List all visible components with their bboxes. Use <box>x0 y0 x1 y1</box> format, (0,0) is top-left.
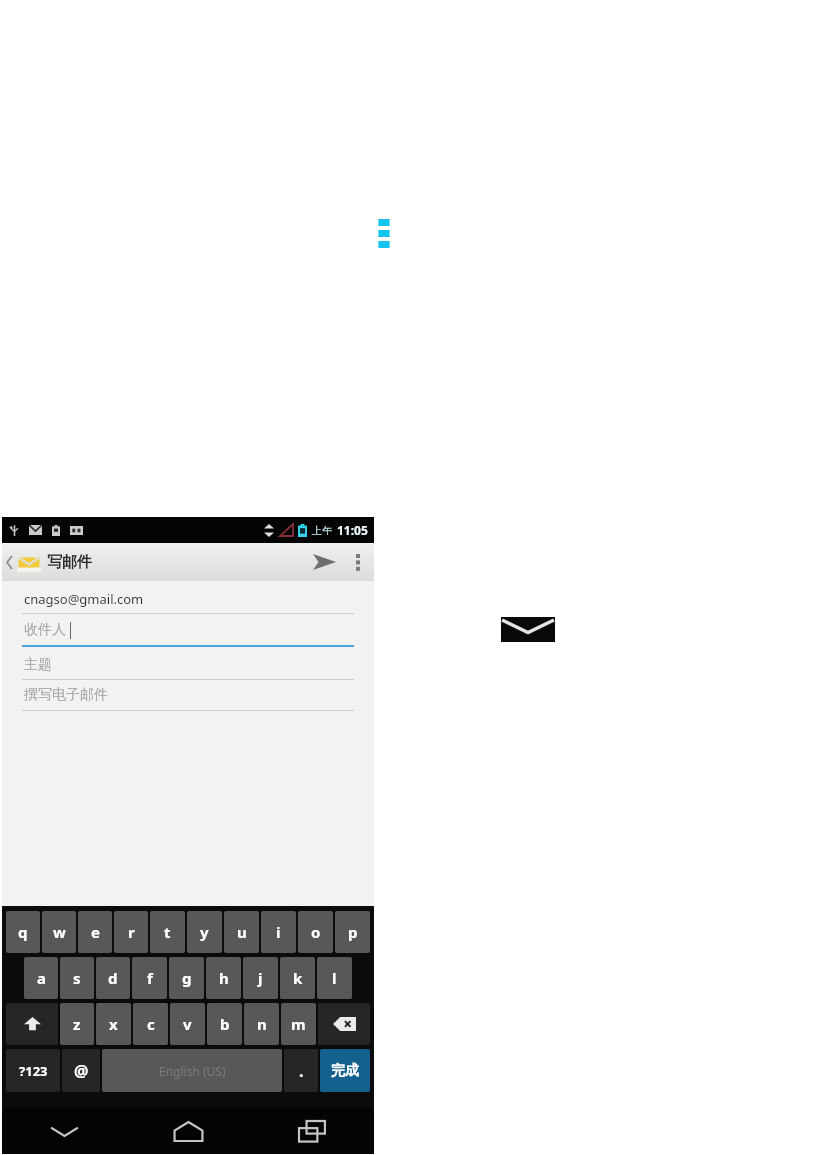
staticText: 收件人 <box>24 621 66 639</box>
staticText: 11:05 <box>337 522 368 538</box>
button[interactable]: v <box>170 1003 205 1045</box>
button[interactable]: a <box>24 957 58 999</box>
button[interactable]: 完成 <box>320 1049 370 1092</box>
staticText: s <box>73 968 81 988</box>
button[interactable]: j <box>243 957 278 999</box>
button[interactable]: w <box>42 911 76 953</box>
button[interactable]: q <box>6 911 40 953</box>
button[interactable]: Email <box>501 617 555 642</box>
button[interactable]: f <box>132 957 167 999</box>
staticText: cnagso@gmail.com <box>24 590 144 608</box>
staticText: q <box>18 922 28 942</box>
button[interactable]: . <box>284 1049 318 1092</box>
button[interactable]: Hide keyboard <box>2 1108 126 1154</box>
button[interactable]: Home <box>126 1108 250 1154</box>
staticText: e <box>91 922 100 942</box>
staticText: English (US) <box>159 1063 226 1079</box>
button[interactable]: m <box>281 1003 316 1045</box>
button[interactable]: z <box>60 1003 94 1045</box>
staticText: v <box>183 1014 192 1034</box>
button[interactable]: Delete <box>318 1003 370 1045</box>
staticText: l <box>332 968 337 988</box>
button[interactable]: More options <box>377 219 391 248</box>
staticText: b <box>220 1014 230 1034</box>
button[interactable]: t <box>150 911 185 953</box>
staticText: f <box>147 968 153 988</box>
staticText: j <box>258 968 263 988</box>
button[interactable]: i <box>261 911 296 953</box>
staticText: z <box>73 1014 81 1034</box>
button[interactable]: Shift <box>6 1003 58 1045</box>
staticText: u <box>237 922 247 942</box>
staticText: a <box>37 968 46 988</box>
staticText: 完成 <box>331 1062 359 1080</box>
button[interactable]: b <box>207 1003 242 1045</box>
button[interactable]: l <box>317 957 352 999</box>
staticText: k <box>293 968 303 988</box>
button[interactable]: s <box>60 957 94 999</box>
button[interactable]: r <box>114 911 148 953</box>
staticText: h <box>219 968 229 988</box>
staticText: o <box>311 922 321 942</box>
button[interactable]: p <box>335 911 370 953</box>
staticText: 写邮件 <box>47 553 92 572</box>
button[interactable]: k <box>280 957 315 999</box>
button[interactable]: ?123 <box>6 1049 60 1092</box>
button[interactable]: cnagso@gmail.com <box>2 585 374 613</box>
button[interactable]: Navigate up <box>2 552 98 573</box>
staticText: . <box>299 1060 304 1082</box>
button[interactable]: More options <box>345 543 371 581</box>
button[interactable]: o <box>298 911 333 953</box>
staticText: d <box>108 968 118 988</box>
staticText: r <box>128 922 135 942</box>
button[interactable]: h <box>206 957 241 999</box>
staticText: m <box>291 1014 306 1034</box>
button[interactable]: x <box>96 1003 131 1045</box>
button[interactable]: @ <box>62 1049 100 1092</box>
button[interactable]: g <box>169 957 204 999</box>
button[interactable]: n <box>244 1003 279 1045</box>
staticText: p <box>348 922 358 942</box>
button[interactable]: Recent apps <box>250 1108 374 1154</box>
button[interactable]: d <box>96 957 130 999</box>
button[interactable]: e <box>78 911 112 953</box>
button[interactable]: y <box>187 911 222 953</box>
button[interactable]: 撰写电子邮件 <box>2 680 374 710</box>
staticText: c <box>147 1014 155 1034</box>
staticText: x <box>109 1014 118 1034</box>
staticText: @ <box>74 1060 89 1082</box>
staticText: t <box>164 922 171 942</box>
staticText: n <box>257 1014 267 1034</box>
staticText: g <box>182 968 192 988</box>
staticText: i <box>276 922 281 942</box>
button[interactable]: c <box>133 1003 168 1045</box>
staticText: ?123 <box>19 1062 48 1080</box>
button[interactable]: English (US) <box>102 1049 282 1092</box>
button[interactable]: 收件人 <box>2 614 374 645</box>
button[interactable]: 主题 <box>2 650 374 679</box>
button[interactable]: Send <box>303 543 345 581</box>
staticText: y <box>200 922 209 942</box>
staticText: 主题 <box>24 656 52 674</box>
staticText: 撰写电子邮件 <box>24 686 108 704</box>
staticText: 上午 <box>312 524 332 537</box>
button[interactable]: u <box>224 911 259 953</box>
staticText: w <box>53 922 66 942</box>
